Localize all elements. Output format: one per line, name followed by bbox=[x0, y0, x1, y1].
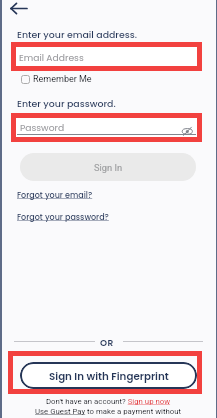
staticText: Sign In with Fingerprint bbox=[49, 369, 169, 383]
staticText: Enter your password. bbox=[17, 97, 116, 110]
staticText: Sign In bbox=[94, 162, 123, 173]
button[interactable]: Email Address bbox=[11, 42, 202, 71]
button[interactable]: Forgot your password? bbox=[17, 212, 109, 223]
button[interactable]: Sign In with Fingerprint bbox=[20, 362, 197, 389]
staticText: Don't have an account? Sign up now bbox=[46, 397, 171, 406]
button[interactable]: Don't have an account? Sign up now bbox=[0, 397, 217, 406]
button[interactable]: Sign In bbox=[20, 153, 196, 181]
staticText: Use Guest Pay to make a payment without bbox=[35, 407, 182, 416]
staticText: Remember Me bbox=[33, 74, 92, 85]
button[interactable] bbox=[6, 0, 32, 18]
button[interactable]: Use Guest Pay to make a payment without bbox=[0, 407, 217, 416]
staticText: OR bbox=[100, 337, 114, 350]
staticText: Enter your email address. bbox=[17, 28, 138, 41]
button[interactable]: Forgot your email? bbox=[17, 190, 93, 201]
button[interactable]: Password bbox=[11, 113, 202, 142]
staticText: Email Address bbox=[19, 51, 84, 64]
button[interactable]: Remember Me bbox=[17, 73, 95, 87]
staticText: Password bbox=[20, 121, 65, 134]
